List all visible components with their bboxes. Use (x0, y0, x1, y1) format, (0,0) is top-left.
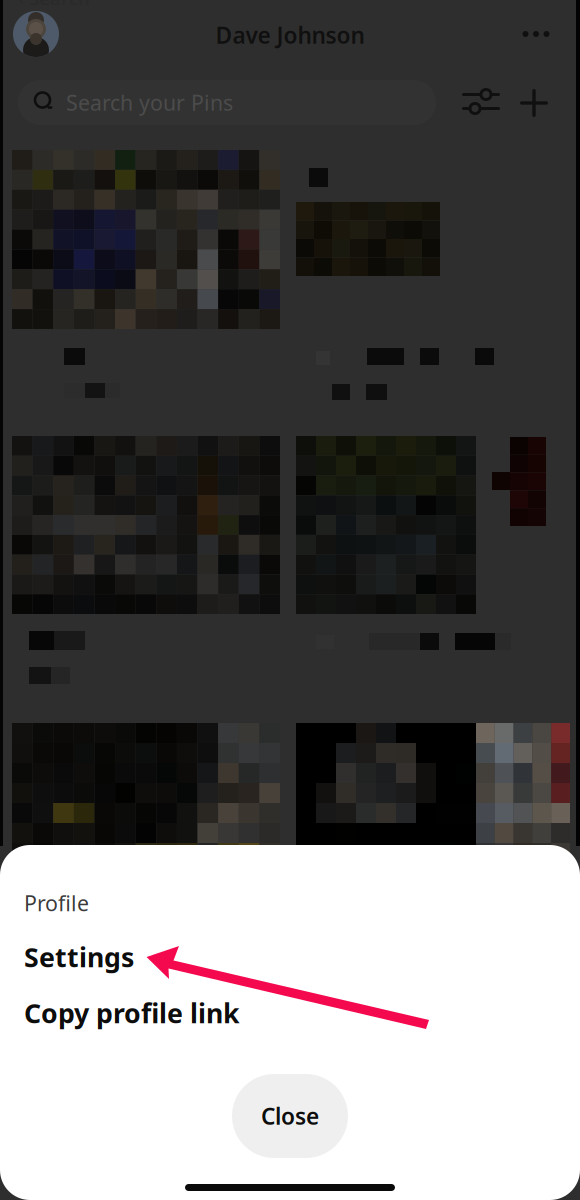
button[interactable]: Filter (462, 86, 500, 118)
button[interactable]: Close (232, 1074, 348, 1158)
staticText: Settings (24, 939, 134, 975)
button[interactable]: Settings (0, 936, 580, 978)
staticText: Copy profile link (24, 995, 240, 1031)
staticText: Profile (24, 889, 89, 917)
button[interactable]: More options (513, 20, 559, 48)
staticText: Close (261, 1101, 319, 1131)
button[interactable]: Profile photo (13, 11, 59, 57)
button[interactable]: Copy profile link (0, 992, 580, 1034)
button[interactable]: Search your Pins (18, 80, 436, 125)
staticText: Search your Pins (66, 88, 233, 117)
staticText: Dave Johnson (215, 20, 364, 50)
button[interactable]: Create Pin (518, 88, 550, 118)
